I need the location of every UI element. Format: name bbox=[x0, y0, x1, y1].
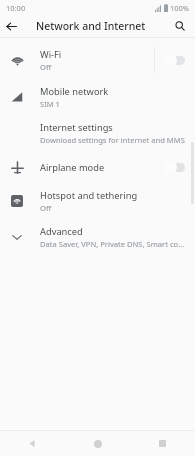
button[interactable]: Toggle bbox=[163, 158, 189, 176]
staticText: Wi-Fi bbox=[40, 48, 62, 61]
button[interactable]: Mobile network bbox=[0, 79, 195, 115]
staticText: 100% bbox=[170, 3, 190, 13]
staticText: Off bbox=[40, 62, 52, 72]
staticText: Off bbox=[40, 203, 52, 213]
staticText: Advanced bbox=[40, 225, 83, 238]
button[interactable]: Search bbox=[168, 15, 192, 37]
staticText: Internet settings bbox=[40, 121, 113, 134]
staticText: SIM 1 bbox=[40, 99, 60, 109]
button[interactable]: Wi-Fi bbox=[0, 41, 195, 79]
button[interactable]: Back bbox=[0, 431, 65, 456]
button[interactable]: Back bbox=[0, 15, 22, 37]
staticText: Download settings for internet and MMS bbox=[40, 135, 185, 145]
button[interactable]: Recent apps bbox=[130, 431, 195, 456]
staticText: 10:00 bbox=[6, 3, 26, 13]
staticText: Airplane mode bbox=[40, 161, 105, 174]
staticText: Network and Internet bbox=[36, 19, 168, 33]
button[interactable]: Hotspot and tethering bbox=[0, 183, 195, 219]
button[interactable]: Advanced bbox=[0, 219, 195, 255]
button[interactable]: Internet settings bbox=[0, 115, 195, 151]
staticText: Mobile network bbox=[40, 85, 109, 98]
staticText: Data Saver, VPN, Private DNS, Smart conn… bbox=[40, 239, 185, 249]
staticText: Hotspot and tethering bbox=[40, 189, 138, 202]
button[interactable]: Airplane mode bbox=[0, 151, 195, 183]
button[interactable]: Toggle bbox=[163, 51, 189, 69]
button[interactable]: Home bbox=[65, 431, 130, 456]
